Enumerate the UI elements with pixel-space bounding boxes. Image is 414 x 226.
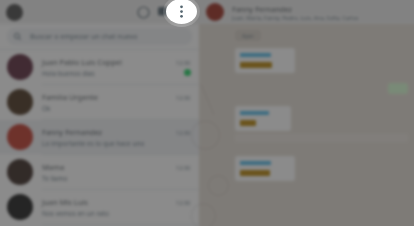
staticText: 12:30 xyxy=(176,199,191,206)
staticText: 12:30 xyxy=(176,94,191,101)
staticText: Nos vemos en un rato xyxy=(42,209,110,218)
staticText: Te llamo xyxy=(42,174,68,183)
staticText: 12:30 xyxy=(176,59,191,66)
button[interactable]: Familia Urgente xyxy=(0,85,199,120)
staticText: Familia Urgente xyxy=(42,92,98,102)
staticText: Fanny Fernandez xyxy=(232,4,293,14)
button[interactable]: Mama xyxy=(0,155,199,190)
button[interactable]: Fanny Fernandez xyxy=(0,120,199,155)
staticText: Mama xyxy=(42,162,65,172)
button[interactable]: Juan Pablo Luis Coppel xyxy=(0,50,199,85)
button[interactable] xyxy=(240,53,290,68)
button[interactable] xyxy=(240,111,286,126)
staticText: Juan Mis Luis xyxy=(42,197,88,207)
staticText: Juan, Maria, Fanny, Pedro, Luis, Ana, So… xyxy=(232,14,359,21)
staticText: Hola buenos dias xyxy=(42,69,95,78)
button[interactable]: Status xyxy=(133,2,153,22)
staticText: Juan Pablo Luis Coppel xyxy=(42,57,122,67)
staticText: Ayer xyxy=(242,32,254,39)
staticText: 12:30 xyxy=(176,164,191,171)
button[interactable]: Profile xyxy=(6,4,23,21)
staticText: Fanny Fernandez xyxy=(42,127,103,137)
button[interactable] xyxy=(240,161,290,176)
button[interactable]: Menu xyxy=(166,0,197,24)
staticText: Ok xyxy=(42,104,51,113)
button[interactable]: Buscar o empezar un chat nuevo xyxy=(14,28,185,45)
staticText: 12:30 xyxy=(176,129,191,136)
button[interactable]: New chat xyxy=(153,2,173,22)
staticText: Buscar o empezar un chat nuevo xyxy=(30,32,138,42)
staticText: Lo importante es lo que hace uno xyxy=(42,139,145,148)
button[interactable]: Juan Mis Luis xyxy=(0,190,199,225)
button[interactable]: Fanny Fernandez xyxy=(206,0,407,24)
